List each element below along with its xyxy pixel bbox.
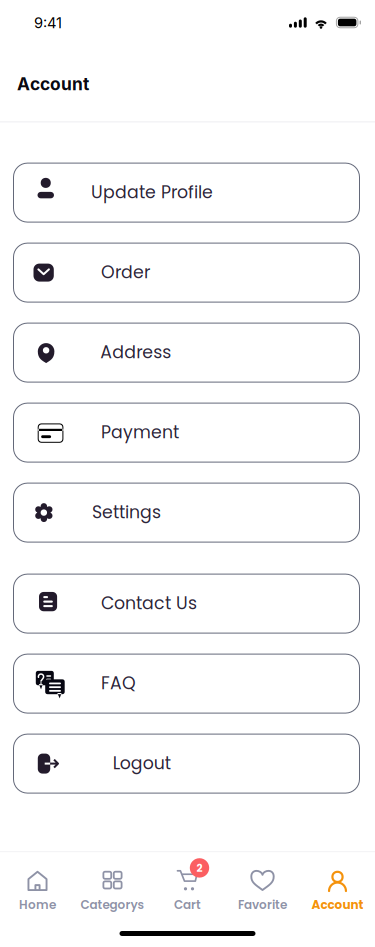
staticText: Contact Us <box>101 591 197 615</box>
staticText: Home <box>19 896 56 913</box>
staticText: FAQ <box>101 671 136 695</box>
staticText: Account <box>311 896 363 913</box>
button[interactable]: Address <box>13 323 360 383</box>
button[interactable]: Home <box>0 852 75 912</box>
staticText: Address <box>100 340 171 364</box>
button[interactable]: Cart <box>150 852 225 912</box>
button[interactable]: Order <box>13 243 360 303</box>
staticText: 9:41 <box>34 14 62 32</box>
button[interactable]: Update Profile <box>13 163 360 223</box>
button[interactable]: Favorite <box>225 852 300 912</box>
staticText: Cart <box>174 896 201 913</box>
button[interactable]: Account <box>300 852 375 912</box>
staticText: Order <box>101 260 150 284</box>
button[interactable]: FAQ <box>13 654 360 714</box>
button[interactable]: Settings <box>13 483 360 543</box>
button[interactable]: Contact Us <box>13 574 360 634</box>
staticText: Favorite <box>238 896 287 913</box>
staticText: Categorys <box>80 896 144 913</box>
button[interactable]: Categorys <box>75 852 150 912</box>
staticText: Logout <box>113 751 171 775</box>
button[interactable]: Payment <box>13 403 360 463</box>
staticText: Payment <box>101 420 179 444</box>
staticText: Account <box>17 73 89 94</box>
staticText: Settings <box>92 500 161 524</box>
button[interactable]: Logout <box>13 734 360 794</box>
staticText: 2 <box>196 860 202 875</box>
staticText: Update Profile <box>91 180 213 204</box>
